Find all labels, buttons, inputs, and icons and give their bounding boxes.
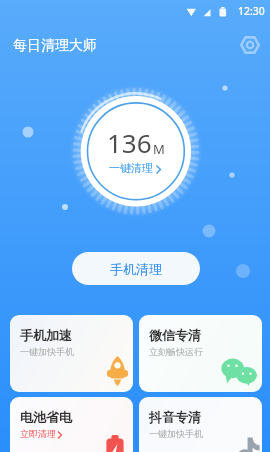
staticText: 微信专清: [149, 327, 201, 343]
staticText: 一键清理: [109, 161, 153, 175]
staticText: 手机清理: [110, 261, 162, 277]
staticText: 电池省电: [20, 409, 72, 425]
button[interactable]: 手机加速: [10, 315, 133, 392]
staticText: 抖音专清: [149, 409, 201, 425]
button[interactable]: 抖音专清: [139, 397, 262, 452]
staticText: 一键加快手机: [149, 428, 203, 439]
button[interactable]: 电池省电: [10, 397, 133, 452]
staticText: 一键加快手机: [20, 346, 74, 357]
staticText: 立刻畅快运行: [149, 346, 203, 357]
staticText: 136: [107, 125, 152, 160]
button[interactable]: Settings: [238, 33, 262, 57]
staticText: 12:30: [238, 4, 265, 18]
button[interactable]: 一键清理: [105, 160, 167, 176]
staticText: 每日清理大师: [13, 37, 97, 55]
staticText: 手机加速: [20, 327, 72, 343]
button[interactable]: 微信专清: [139, 315, 262, 392]
button[interactable]: 手机清理: [72, 252, 200, 285]
staticText: 立即清理: [20, 428, 56, 439]
staticText: M: [153, 140, 165, 158]
